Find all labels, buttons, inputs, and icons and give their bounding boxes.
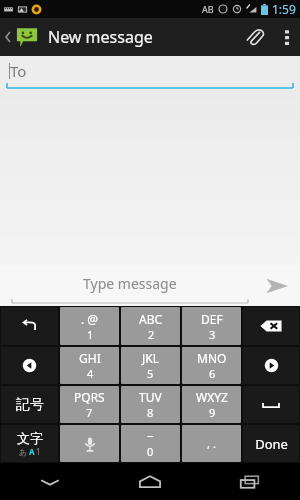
staticText: JKL: [142, 350, 159, 366]
staticText: PQRS: [74, 389, 105, 405]
button[interactable]: Undo: [1, 307, 58, 345]
button[interactable]: Cursor left: [1, 347, 58, 384]
button[interactable]: TUV: [121, 386, 180, 423]
button[interactable]: JKL: [121, 347, 180, 384]
staticText: 8: [147, 405, 154, 420]
staticText: TUV: [139, 389, 162, 405]
staticText: GHI: [79, 350, 101, 366]
button[interactable]: Backspace: [243, 307, 299, 345]
button[interactable]: PQRS: [60, 386, 119, 423]
button[interactable]: Done: [243, 425, 299, 462]
button[interactable]: DEF: [182, 307, 241, 345]
staticText: 9: [209, 405, 216, 420]
staticText: New message: [48, 26, 153, 48]
button[interactable]: Cursor right: [243, 347, 299, 384]
staticText: 3: [209, 327, 216, 342]
staticText: 4: [87, 366, 94, 381]
staticText: MNO: [197, 350, 227, 366]
button[interactable]: GHI: [60, 347, 119, 384]
button[interactable]: Space: [243, 386, 299, 423]
staticText: Done: [255, 435, 288, 453]
staticText: 1: [36, 446, 41, 457]
staticText: , .: [207, 436, 216, 451]
staticText: あ: [19, 447, 28, 457]
staticText: 6: [209, 366, 216, 381]
button[interactable]: Voice input: [60, 425, 119, 462]
staticText: −: [147, 428, 154, 444]
button[interactable]: ABC: [121, 307, 180, 345]
staticText: . @: [81, 311, 99, 327]
staticText: 0: [147, 444, 154, 459]
button[interactable]: Navigate up: [0, 18, 43, 56]
button[interactable]: −: [121, 425, 180, 462]
button[interactable]: MNO: [182, 347, 241, 384]
button[interactable]: Type message: [12, 266, 248, 306]
button[interactable]: . @: [60, 307, 119, 345]
staticText: 5: [147, 366, 154, 381]
staticText: 2: [148, 327, 155, 342]
button[interactable]: WXYZ: [182, 386, 241, 423]
staticText: 1:59: [272, 1, 296, 17]
button[interactable]: Home: [100, 463, 200, 500]
button[interactable]: More options: [274, 18, 300, 56]
button[interactable]: Attach: [234, 18, 274, 56]
button[interactable]: , .: [182, 425, 241, 462]
button[interactable]: 文字: [1, 425, 58, 462]
button[interactable]: Send: [254, 266, 300, 306]
staticText: A: [29, 446, 35, 457]
staticText: ABC: [139, 311, 163, 327]
staticText: AB: [202, 3, 214, 15]
button[interactable]: Recent apps: [200, 463, 300, 500]
staticText: 文字: [17, 430, 43, 446]
staticText: Type message: [83, 274, 177, 293]
staticText: To: [10, 61, 27, 81]
staticText: DEF: [201, 311, 223, 327]
staticText: 7: [86, 405, 93, 420]
staticText: 記号: [16, 396, 44, 414]
staticText: WXYZ: [196, 389, 228, 405]
button[interactable]: 記号: [1, 386, 58, 423]
button[interactable]: To: [0, 56, 300, 90]
button[interactable]: Hide keyboard: [0, 463, 100, 500]
staticText: 1: [87, 327, 94, 342]
